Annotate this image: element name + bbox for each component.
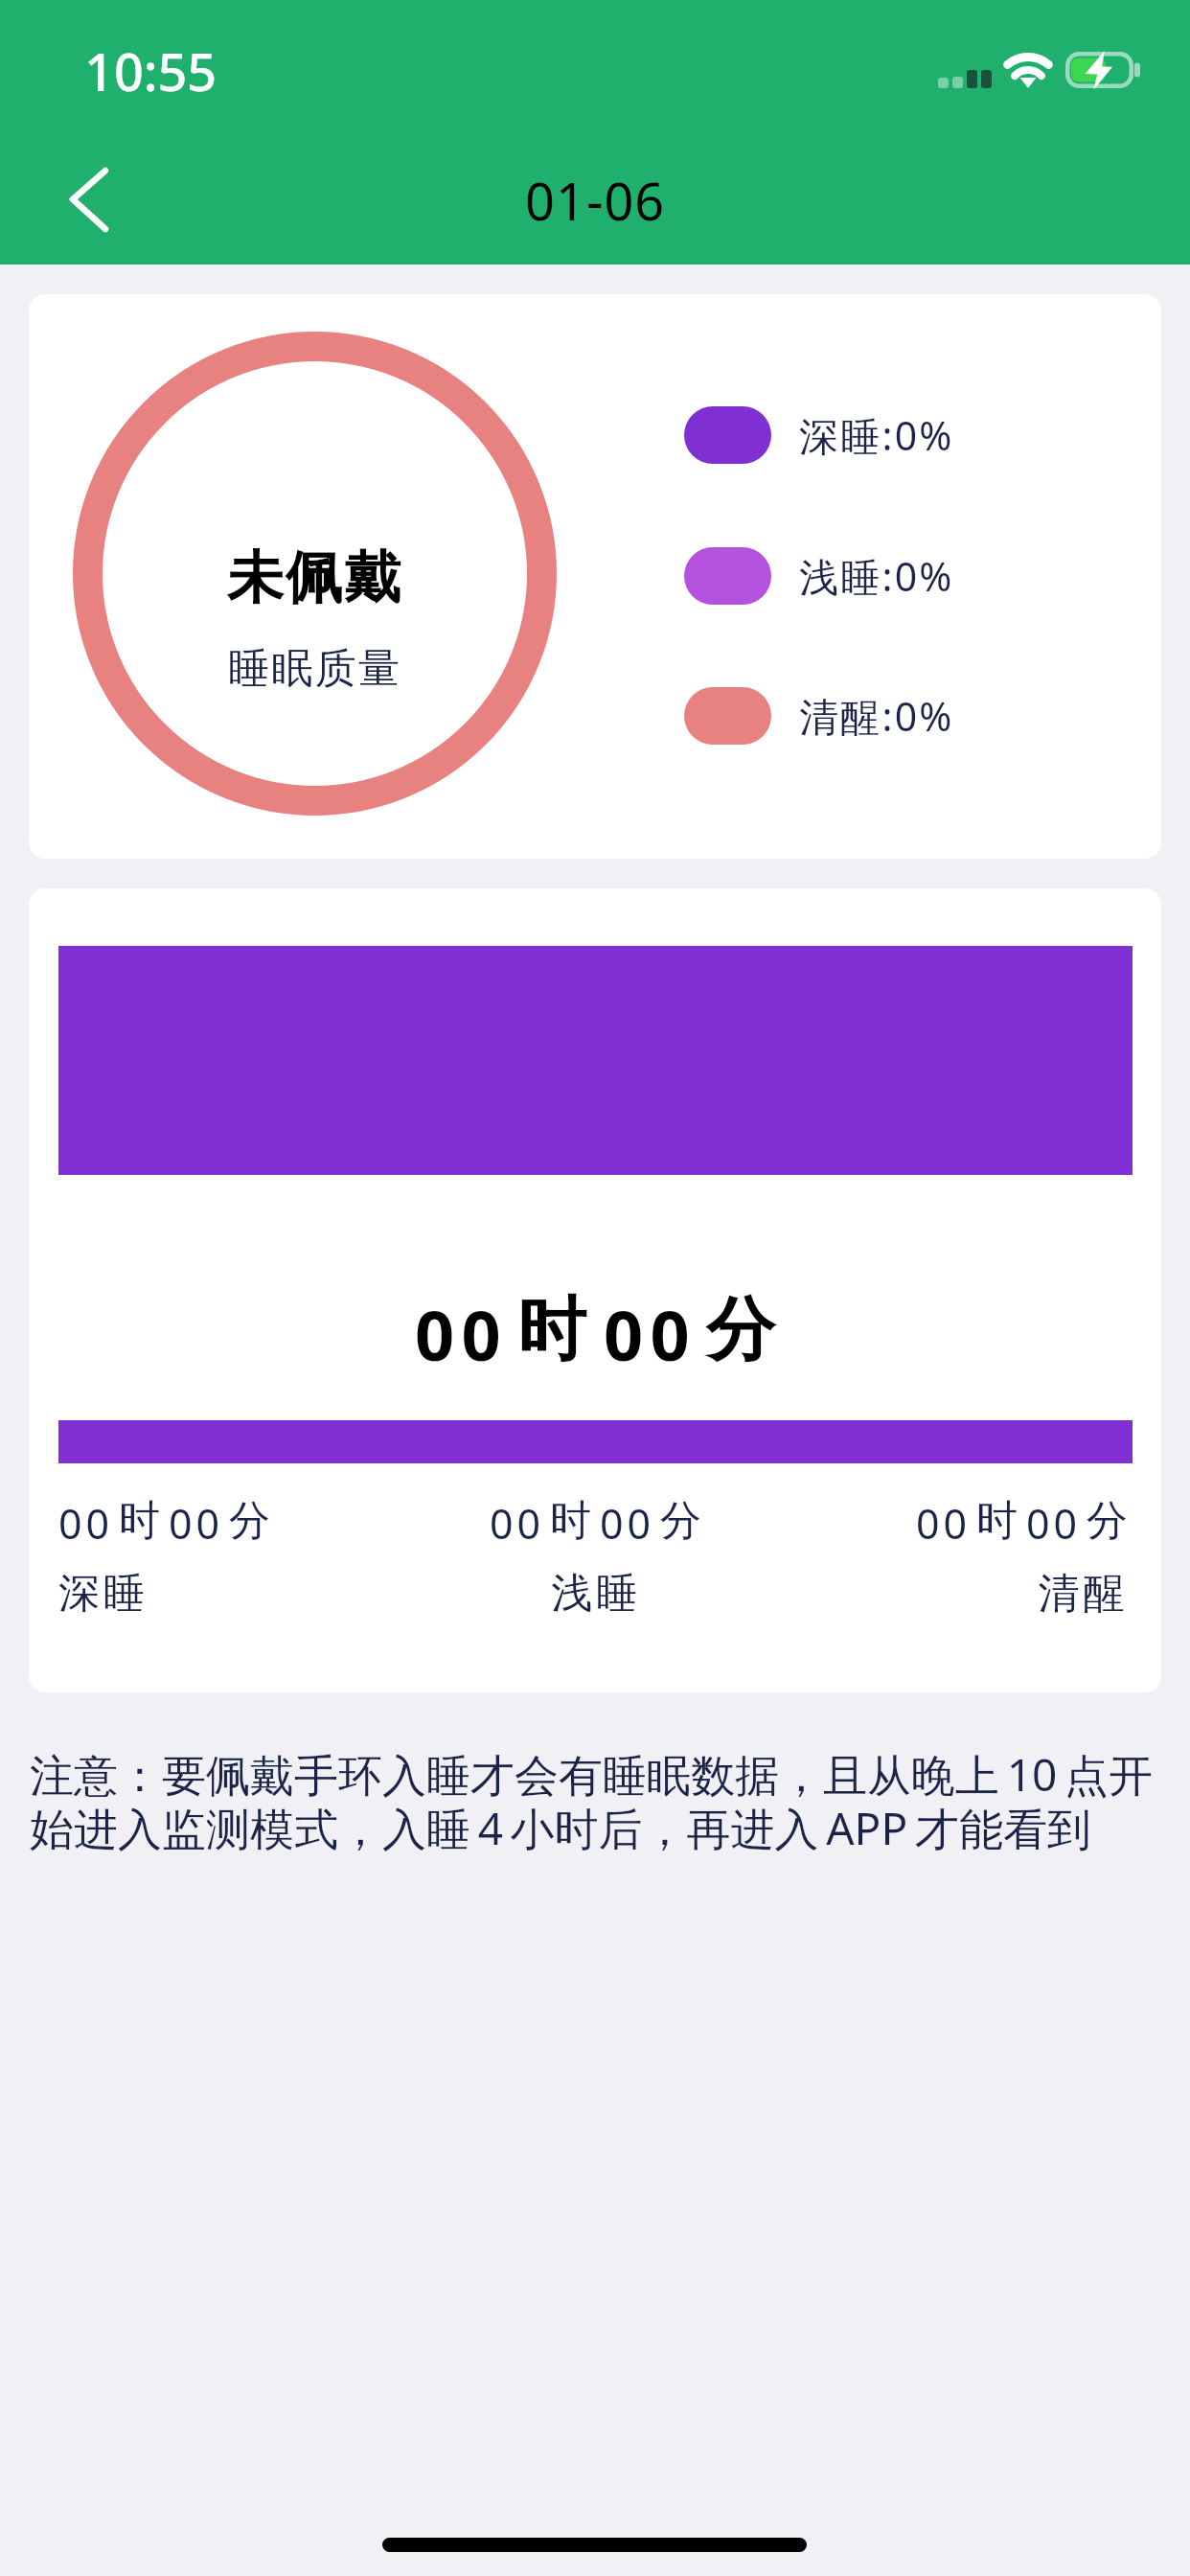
staticText: 睡眠质量 [228, 643, 402, 695]
staticText: 分 [229, 1495, 270, 1547]
staticText: 时 [119, 1495, 160, 1547]
staticText: 分 [706, 1287, 775, 1374]
button[interactable]: 清醒:0% [684, 687, 954, 745]
button[interactable]: Back [42, 127, 136, 252]
staticText: 分 [660, 1495, 701, 1547]
staticText: 00 [916, 1495, 971, 1552]
staticText: 时 [976, 1495, 1018, 1547]
staticText: 00 [604, 1287, 697, 1381]
staticText: 深睡:0% [799, 408, 954, 462]
staticText: 00 [415, 1287, 508, 1381]
staticText: 00 [58, 1495, 113, 1552]
staticText: 00 [490, 1495, 544, 1552]
staticText: 00 [600, 1495, 654, 1552]
staticText: 时 [550, 1495, 591, 1547]
button[interactable]: 浅睡:0% [684, 547, 954, 605]
staticText: 时 [517, 1287, 586, 1374]
staticText: 浅睡 [551, 1568, 641, 1620]
button[interactable]: 深睡:0% [684, 406, 954, 464]
staticText: 未佩戴 [227, 542, 403, 613]
staticText: 00 [1026, 1495, 1081, 1552]
staticText: 注意：要佩戴手环入睡才会有睡眠数据，且从晚上 10 点开始进入监测模式，入睡 4… [30, 1744, 1160, 1858]
staticText: 浅睡:0% [799, 549, 954, 603]
staticText: 深睡 [58, 1568, 149, 1620]
staticText: 10:55 [84, 35, 217, 106]
staticText: 分 [1087, 1495, 1128, 1547]
staticText: 00 [169, 1495, 223, 1552]
staticText: 清醒 [1038, 1568, 1128, 1620]
staticText: 清醒:0% [799, 689, 954, 743]
staticText: 01-06 [525, 165, 666, 236]
